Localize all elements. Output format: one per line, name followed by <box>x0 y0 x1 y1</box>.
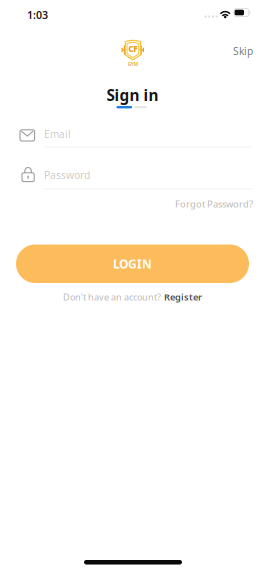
button[interactable]: Password <box>16 165 256 191</box>
staticText: Skip <box>233 44 253 58</box>
staticText: Don't have an account? <box>63 291 161 303</box>
staticText: 1:03 <box>27 7 48 22</box>
button[interactable]: Register <box>164 291 202 303</box>
staticText: Sign in <box>106 85 158 105</box>
button[interactable]: Email <box>16 126 256 149</box>
staticText: CF <box>128 43 137 54</box>
button[interactable]: LOGIN <box>16 244 249 283</box>
button[interactable]: Skip <box>219 38 265 64</box>
staticText: Email <box>44 127 71 141</box>
staticText: Forgot Password? <box>175 198 253 210</box>
staticText: Password <box>44 168 90 182</box>
button[interactable]: Forgot Password? <box>152 194 253 214</box>
staticText: LOGIN <box>113 256 152 272</box>
staticText: GYM <box>128 61 138 67</box>
staticText: Register <box>164 291 202 303</box>
